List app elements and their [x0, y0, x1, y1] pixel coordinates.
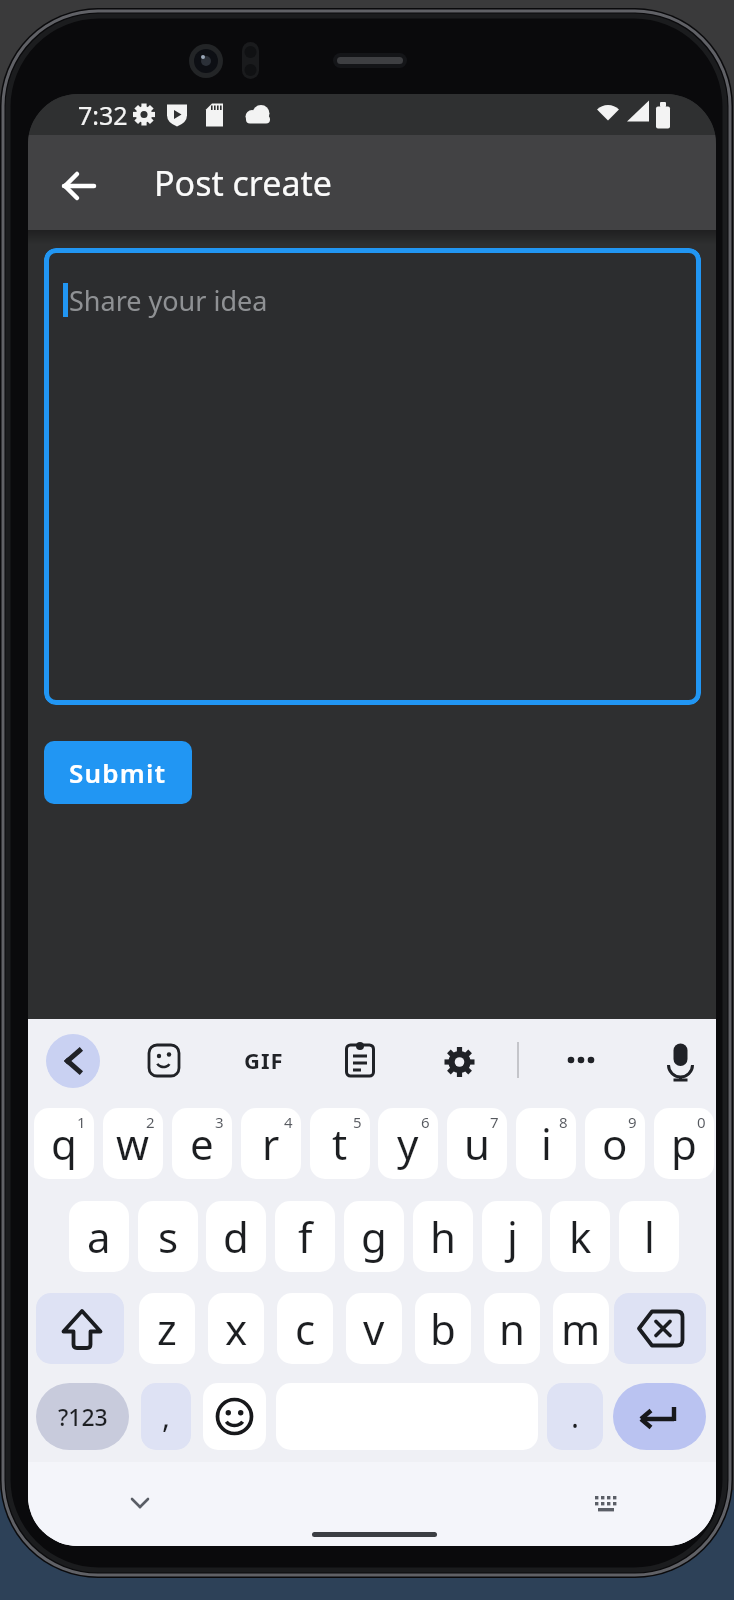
button[interactable]: m	[553, 1293, 609, 1364]
staticText: Submit	[69, 755, 167, 790]
staticText: 7	[490, 1112, 499, 1132]
staticText: 3	[215, 1112, 224, 1132]
staticText: 7:32	[78, 98, 128, 132]
staticText: ?123	[58, 1401, 108, 1432]
staticText: GIF	[244, 1045, 284, 1075]
button[interactable]: u	[447, 1108, 507, 1179]
staticText: 0	[697, 1112, 706, 1132]
button[interactable]: w	[103, 1108, 163, 1179]
button[interactable]: Submit	[44, 741, 192, 804]
button[interactable]	[36, 1293, 124, 1364]
button[interactable]: l	[619, 1201, 679, 1272]
button[interactable]: ?123	[36, 1383, 129, 1450]
staticText: i	[541, 1115, 552, 1172]
staticText: b	[430, 1300, 456, 1357]
button[interactable]: v	[346, 1293, 402, 1364]
staticText: a	[87, 1208, 111, 1265]
staticText: 1	[77, 1112, 86, 1132]
button[interactable]: b	[415, 1293, 471, 1364]
button[interactable]: e	[172, 1108, 232, 1179]
staticText: 2	[146, 1112, 155, 1132]
staticText: p	[671, 1115, 697, 1172]
button[interactable]: x	[208, 1293, 264, 1364]
button[interactable]: f	[275, 1201, 335, 1272]
button[interactable]: a	[69, 1201, 129, 1272]
button[interactable]	[614, 1293, 706, 1364]
button[interactable]	[203, 1383, 266, 1450]
staticText: n	[499, 1300, 525, 1357]
staticText: ,	[162, 1396, 171, 1437]
button[interactable]: t	[310, 1108, 370, 1179]
staticText: l	[644, 1208, 655, 1265]
staticText: .	[571, 1396, 580, 1437]
staticText: w	[116, 1115, 150, 1172]
button[interactable]: i	[516, 1108, 576, 1179]
staticText: m	[561, 1300, 601, 1357]
button[interactable]: h	[413, 1201, 473, 1272]
staticText: j	[507, 1208, 518, 1265]
button[interactable]: q	[34, 1108, 94, 1179]
button[interactable]: o	[585, 1108, 645, 1179]
staticText: r	[262, 1115, 280, 1172]
staticText: Post create	[154, 160, 332, 206]
staticText: 8	[559, 1112, 568, 1132]
button[interactable]: n	[484, 1293, 540, 1364]
button[interactable]: j	[482, 1201, 542, 1272]
staticText: f	[298, 1208, 313, 1265]
button[interactable]: .	[547, 1383, 603, 1450]
button[interactable]: k	[550, 1201, 610, 1272]
staticText: 9	[628, 1112, 637, 1132]
button[interactable]: z	[139, 1293, 195, 1364]
staticText: g	[361, 1208, 387, 1265]
staticText: h	[430, 1208, 456, 1265]
staticText: k	[569, 1208, 592, 1265]
staticText: Share your idea	[69, 282, 268, 319]
button[interactable]: d	[206, 1201, 266, 1272]
button[interactable]: Share your idea	[44, 248, 701, 705]
button[interactable]: c	[277, 1293, 333, 1364]
staticText: e	[190, 1115, 214, 1172]
button[interactable]: p	[654, 1108, 714, 1179]
staticText: 4	[284, 1112, 293, 1132]
button[interactable]	[46, 1034, 100, 1088]
staticText: u	[464, 1115, 490, 1172]
staticText: 5	[353, 1112, 362, 1132]
staticText: x	[225, 1300, 248, 1357]
staticText: q	[51, 1115, 77, 1172]
staticText: v	[363, 1300, 385, 1357]
button[interactable]	[28, 135, 128, 230]
staticText: c	[295, 1300, 316, 1357]
staticText: d	[223, 1208, 249, 1265]
staticText: o	[602, 1115, 628, 1172]
staticText: z	[157, 1300, 177, 1357]
button[interactable]: GIF	[235, 1035, 293, 1085]
staticText: s	[158, 1208, 179, 1265]
staticText: y	[397, 1115, 419, 1172]
button[interactable]: r	[241, 1108, 301, 1179]
staticText: t	[332, 1115, 348, 1172]
button[interactable]: ,	[141, 1383, 191, 1450]
button[interactable]: y	[378, 1108, 438, 1179]
button[interactable]: s	[138, 1201, 198, 1272]
button[interactable]	[613, 1383, 706, 1450]
button[interactable]: g	[344, 1201, 404, 1272]
staticText: 6	[421, 1112, 430, 1132]
